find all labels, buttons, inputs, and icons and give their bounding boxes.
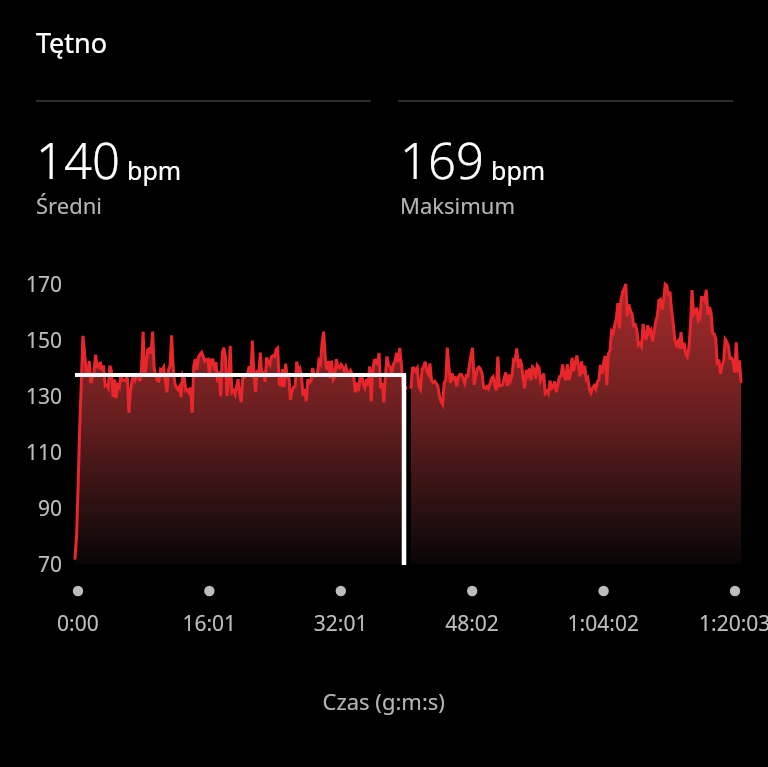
button[interactable]: Heart rate chart xyxy=(0,0,768,767)
